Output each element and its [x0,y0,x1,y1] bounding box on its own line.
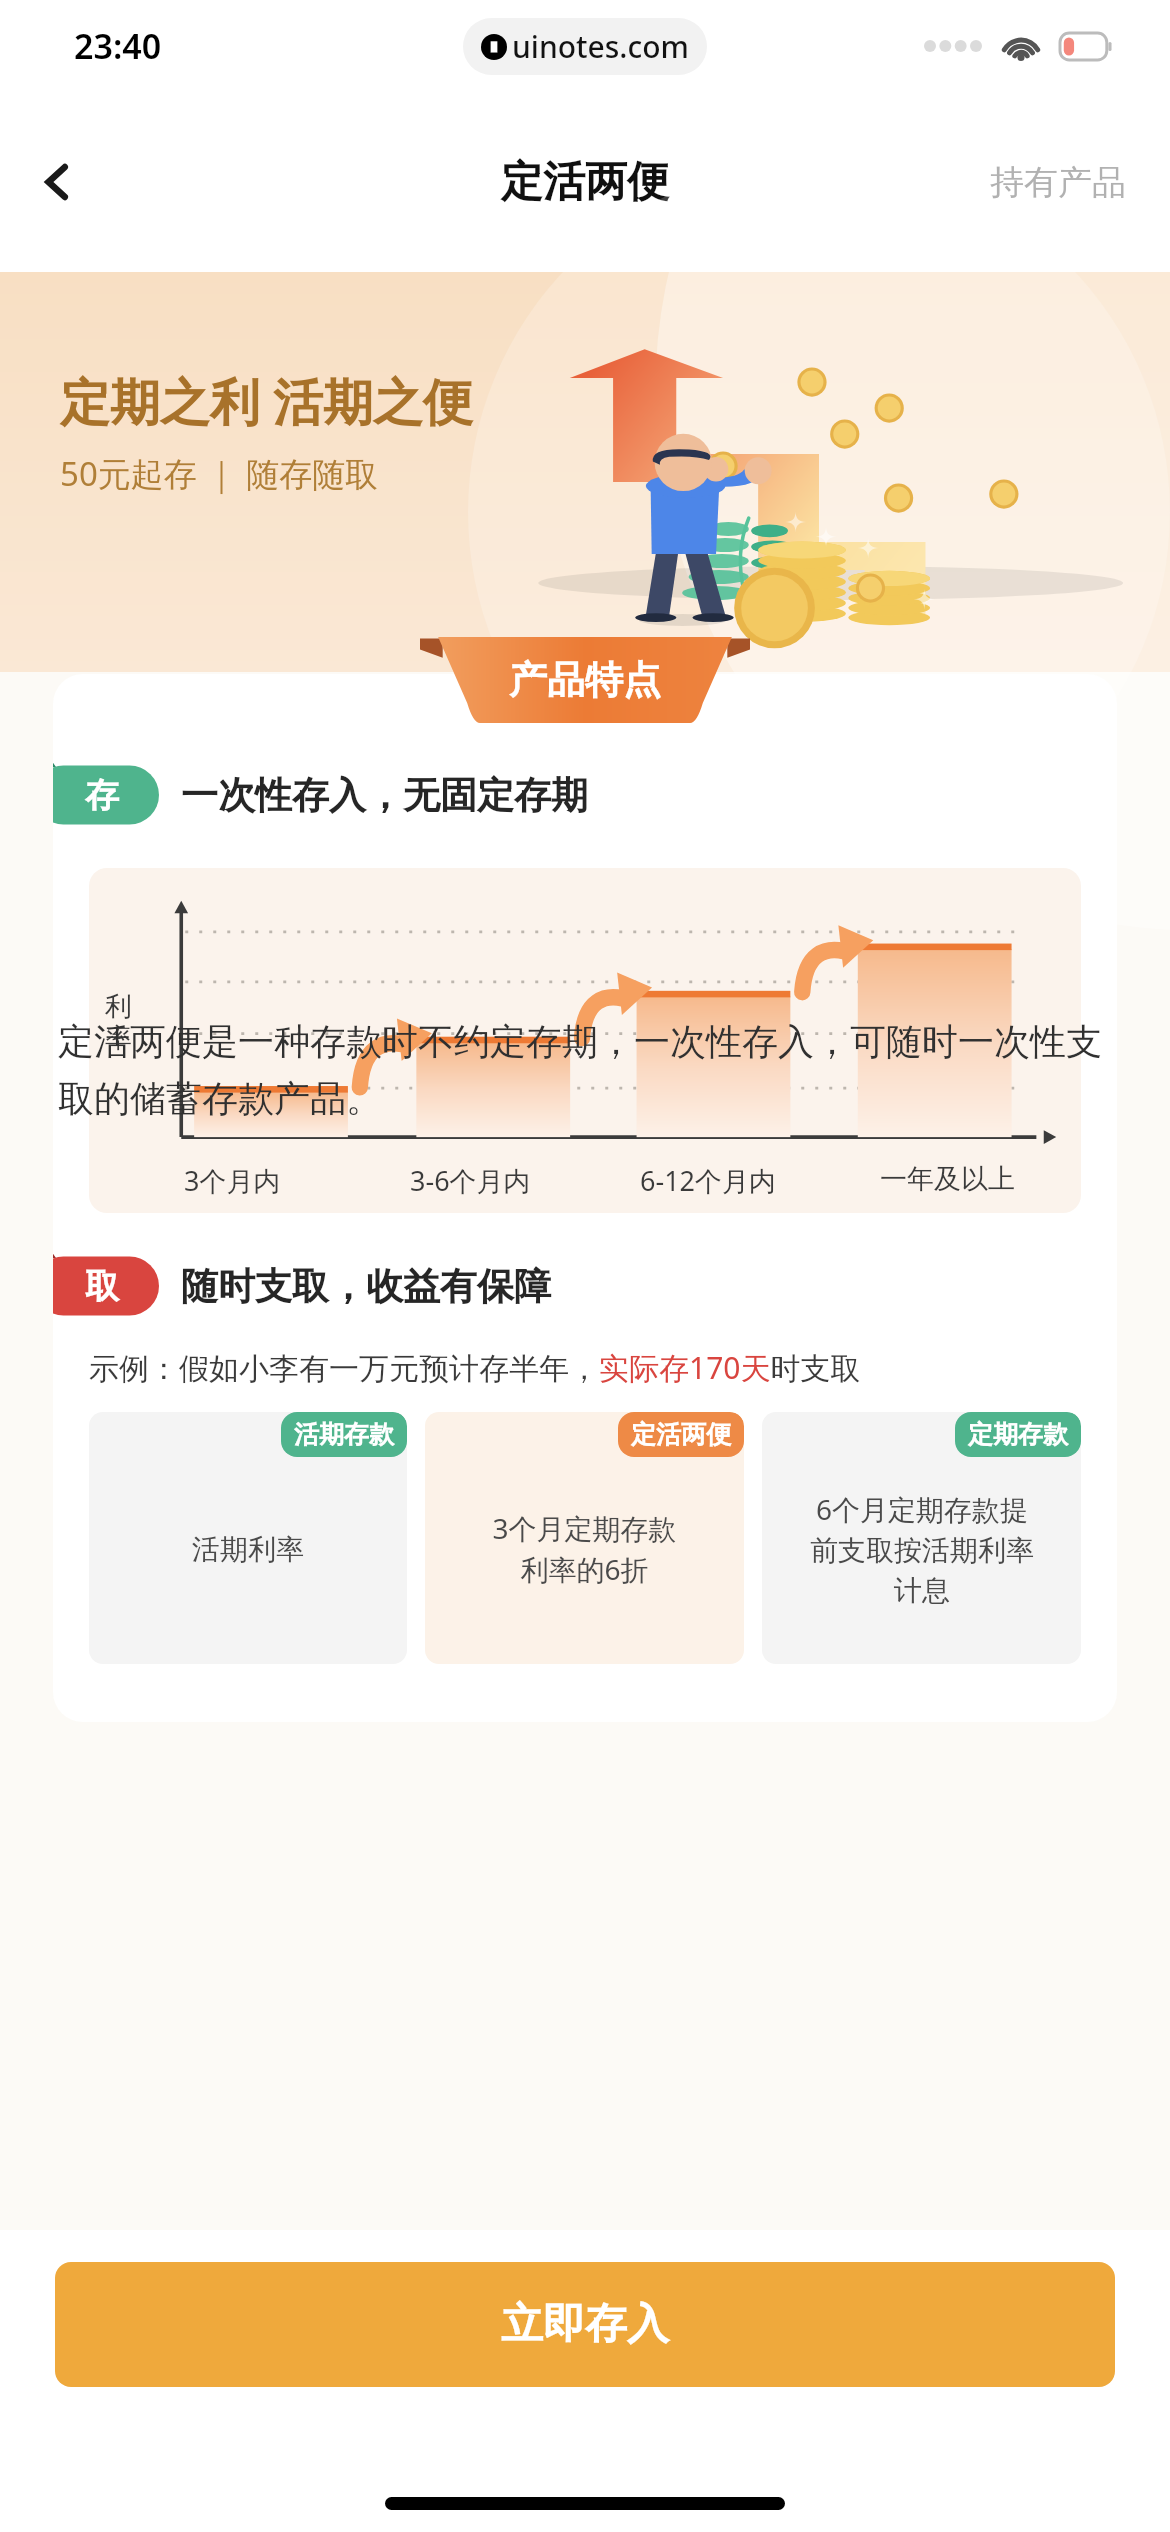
staticText: 3-6个月内 [410,1162,531,1199]
staticText: 利 率 [105,990,132,1055]
staticText: 6-12个月内 [640,1162,777,1199]
staticText: 23:40 [74,23,162,69]
staticText: 定活两便 [501,156,669,209]
button[interactable]: 定期存款 [762,1412,1081,1664]
staticText: 3个月内 [184,1162,281,1199]
button[interactable]: 活期存款 [89,1412,407,1664]
staticText: 50元起存 ｜ 随存随取 [60,451,379,496]
staticText: 持有产品 [990,161,1126,204]
staticText: uinotes.com [512,26,689,67]
button[interactable]: Back [18,142,98,222]
staticText: 定期存款 [968,1419,1068,1450]
staticText: 3个月定期存款 利率的6折 [492,1509,677,1589]
staticText: 示例：假如小李有一万元预计存半年，实际存170天时支取 [89,1347,861,1388]
staticText: 立即存入 [501,2298,669,2351]
staticText: 定期之利 活期之便 [60,367,473,435]
staticText: 定活两便 [631,1419,731,1450]
staticText: 6个月定期存款提 前支取按活期利率 计息 [810,1490,1034,1608]
staticText: 存 [85,774,119,817]
button[interactable]: 持有产品 [982,149,1134,216]
staticText: 一年及以上 [880,1162,1015,1196]
staticText: 随时支取，收益有保障 [181,1263,551,1310]
staticText: 定活两便是一种存款时不约定存期，一次性存入，可随时一次性支取的储蓄存款产品。 [58,1019,1120,1122]
staticText: 产品特点 [509,656,661,704]
staticText: 活期利率 [192,1532,304,1567]
staticText: 一次性存入，无固定存期 [181,772,588,819]
button[interactable]: 定活两便 [425,1412,744,1664]
button[interactable]: 立即存入 [55,2262,1115,2387]
staticText: 取 [85,1265,119,1308]
staticText: 活期存款 [294,1419,394,1450]
